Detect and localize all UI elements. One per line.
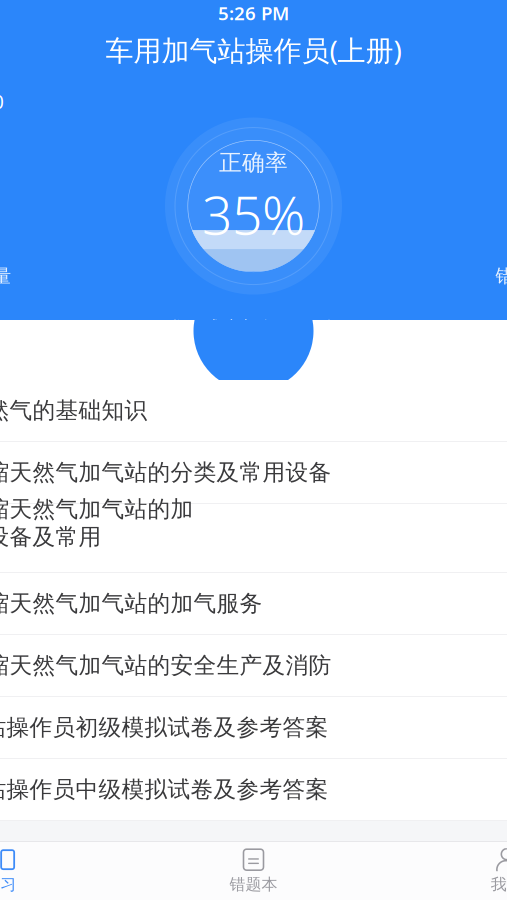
staticText: 压缩天然气加气站的安全生产及消防 [0,652,331,679]
button[interactable]: 第三章 [0,504,507,573]
staticText: 错误数量 [495,265,507,287]
staticText: 车用加气站操作员中级模拟试卷及参考答案 [0,776,328,803]
staticText: 天然气的基础知识 [0,397,147,424]
staticText: 我的 [491,875,507,894]
button[interactable]: 第四章 [0,573,507,635]
button[interactable]: 车用加气站操作员初级模拟试卷及参考答案 [0,697,507,759]
button[interactable]: 第一章 [0,380,507,442]
button[interactable]: 车用加气站操作员中级模拟试卷及参考答案 [0,759,507,821]
staticText: 正确数量 [0,265,11,287]
staticText: 压缩天然气加气站的加气设备及常用 [0,495,193,551]
staticText: 练习 [0,875,16,894]
button[interactable]: 我的 [380,842,507,900]
staticText: 压缩天然气加气站的分类及常用设备 [0,459,331,486]
staticText: 错题本 [229,875,277,894]
staticText: 压缩天然气加气站的加气服务 [0,590,262,617]
button[interactable]: 第五章 [0,635,507,697]
staticText: 答题数量: 20 [0,88,3,115]
button[interactable]: 第二章 [0,442,507,504]
staticText: 35% [202,179,305,249]
staticText: 正确率 [219,149,288,176]
staticText: 您已成功击败98.9%人 [169,316,337,339]
staticText: 车用加气站操作员(上册) [105,31,401,69]
button[interactable]: 错题本 [127,842,380,900]
staticText: 车用加气站操作员初级模拟试卷及参考答案 [0,714,328,741]
button[interactable]: 练习 [0,842,127,900]
staticText: 5:26 PM [218,1,289,25]
